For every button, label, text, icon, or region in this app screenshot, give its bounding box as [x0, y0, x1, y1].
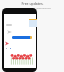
staticText: Stay current with the latest features — [14, 7, 51, 10]
staticText: Free updates. — [21, 1, 44, 6]
